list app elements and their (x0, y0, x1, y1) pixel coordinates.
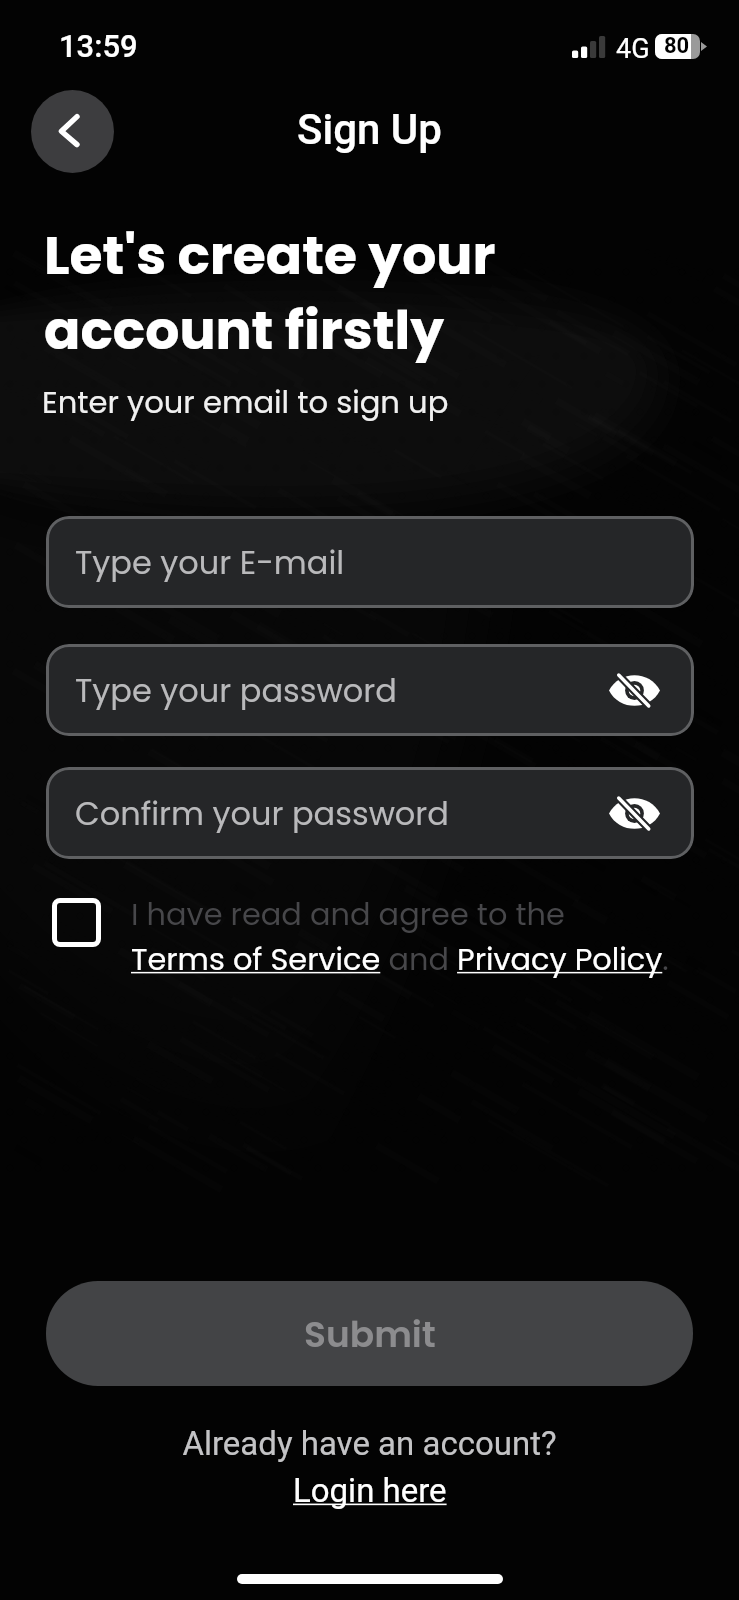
staticText: 4G (616, 33, 650, 65)
staticText: Enter your email to sign up (42, 381, 449, 424)
staticText: Confirm your password (75, 791, 449, 836)
button[interactable]: Confirm your password (46, 767, 694, 859)
staticText: Type your E-mail (75, 540, 345, 585)
button[interactable]: Type your password (46, 644, 694, 736)
button[interactable]: Submit (46, 1281, 693, 1386)
staticText: Sign Up (0, 105, 739, 154)
button[interactable]: Login here (293, 1471, 447, 1510)
staticText: account firstly (44, 293, 445, 368)
staticText: 80 (664, 34, 690, 58)
staticText: Type your password (75, 668, 397, 713)
staticText: Let's create your (44, 218, 496, 293)
staticText: I have read and agree to the Terms of Se… (131, 893, 669, 981)
staticText: 13:59 (59, 28, 138, 64)
button[interactable]: Show password (605, 661, 663, 719)
staticText: Submit (304, 1309, 436, 1359)
button[interactable]: Show password (605, 784, 663, 842)
button[interactable]: I have read and agree to the Terms of Se… (52, 893, 672, 981)
button[interactable]: Type your E-mail (46, 516, 694, 608)
staticText: Already have an account? (0, 1424, 739, 1463)
button[interactable]: Back (31, 90, 114, 173)
